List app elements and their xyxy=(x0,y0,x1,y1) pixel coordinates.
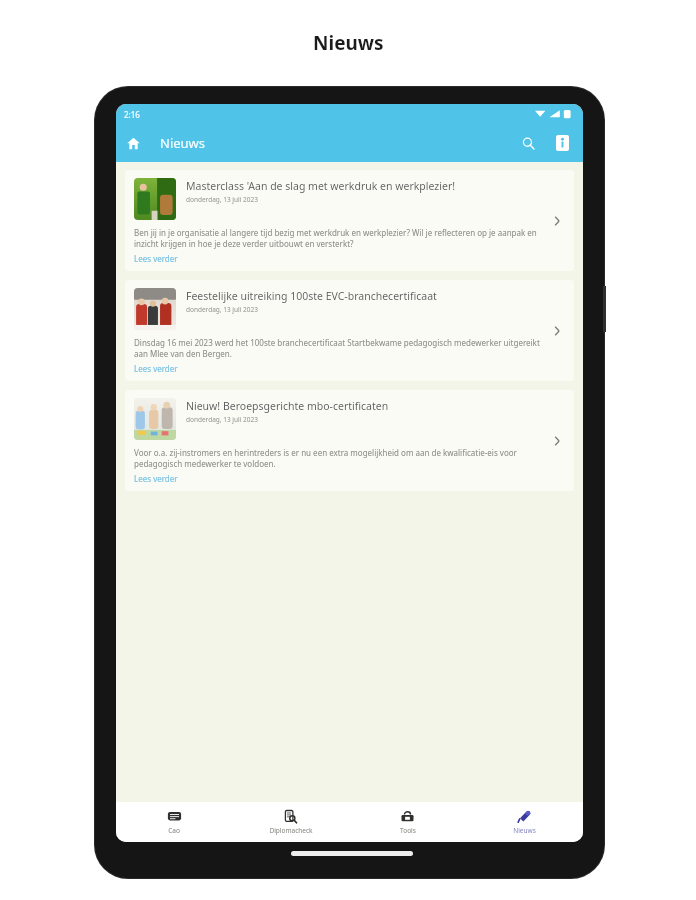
button[interactable]: Nieuws xyxy=(466,802,583,842)
staticText: Nieuws xyxy=(160,134,206,152)
staticText: Nieuw! Beroepsgerichte mbo-certificaten xyxy=(186,399,389,413)
staticText: Nieuws xyxy=(313,30,384,56)
button[interactable]: Lees verder xyxy=(134,253,178,264)
button[interactable]: Home xyxy=(116,126,150,160)
button[interactable]: Nieuw! Beroepsgerichte mbo-certificaten xyxy=(125,390,574,491)
staticText: donderdag, 13 juli 2023 xyxy=(186,195,258,204)
staticText: Voor o.a. zij-instromers en herintreders… xyxy=(134,447,548,469)
staticText: Lees verder xyxy=(134,473,178,484)
other: Open article xyxy=(550,214,564,228)
staticText: Dinsdag 16 mei 2023 werd het 100ste bran… xyxy=(134,337,548,359)
staticText: Tools xyxy=(400,826,416,835)
button[interactable]: Tools xyxy=(349,802,466,842)
button[interactable]: Diplomacheck xyxy=(232,802,349,842)
staticText: 2:16 xyxy=(124,109,140,120)
staticText: Ben jij in je organisatie al langere tij… xyxy=(134,227,548,249)
staticText: Feestelijke uitreiking 100ste EVC-branch… xyxy=(186,289,437,303)
button[interactable]: Lees verder xyxy=(134,363,178,374)
staticText: Lees verder xyxy=(134,253,178,264)
staticText: Cao xyxy=(168,826,180,835)
staticText: donderdag, 13 juli 2023 xyxy=(186,415,258,424)
button[interactable]: Feestelijke uitreiking 100ste EVC-branch… xyxy=(125,280,574,381)
button[interactable]: Lees verder xyxy=(134,473,178,484)
button[interactable]: Information xyxy=(545,126,579,160)
other: Open article xyxy=(550,324,564,338)
button[interactable]: Search xyxy=(511,126,545,160)
staticText: Masterclass 'Aan de slag met werkdruk en… xyxy=(186,179,456,193)
other: Open article xyxy=(550,434,564,448)
staticText: Diplomacheck xyxy=(269,826,313,835)
staticText: Nieuws xyxy=(513,826,536,835)
staticText: donderdag, 13 juli 2023 xyxy=(186,305,258,314)
button[interactable]: Cao xyxy=(116,802,232,842)
button[interactable]: Masterclass 'Aan de slag met werkdruk en… xyxy=(125,170,574,271)
staticText: Lees verder xyxy=(134,363,178,374)
